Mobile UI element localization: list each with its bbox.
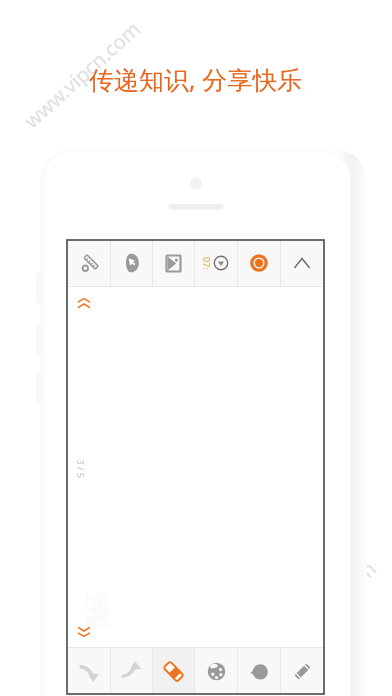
staticText: 3 / 5: [74, 459, 86, 478]
staticText: 传递知识, 分享快乐: [89, 62, 303, 96]
button[interactable]: Redo: [111, 648, 152, 694]
button[interactable]: Hand tool: [111, 240, 152, 286]
button[interactable]: Pencil: [281, 648, 323, 694]
button[interactable]: Previous page: [74, 294, 94, 314]
staticText: 点击切换: [97, 593, 111, 627]
button[interactable]: Collapse toolbar: [281, 240, 323, 286]
staticText: www.vipcn.com: [254, 555, 382, 674]
staticText: 上下翻页: [85, 593, 99, 627]
button[interactable]: Recording time: [195, 240, 237, 286]
button[interactable]: Record: [238, 240, 280, 286]
staticText: www.vipcn.com: [18, 15, 146, 134]
button[interactable]: Brush size: [238, 648, 280, 694]
staticText: 07:32: [201, 257, 213, 269]
button[interactable]: Eraser: [153, 648, 194, 694]
button[interactable]: Undo: [69, 648, 110, 694]
button[interactable]: Insert image: [153, 240, 194, 286]
button[interactable]: Ruler: [69, 240, 110, 286]
button[interactable]: Next page: [74, 621, 94, 641]
button[interactable]: Color palette: [195, 648, 237, 694]
